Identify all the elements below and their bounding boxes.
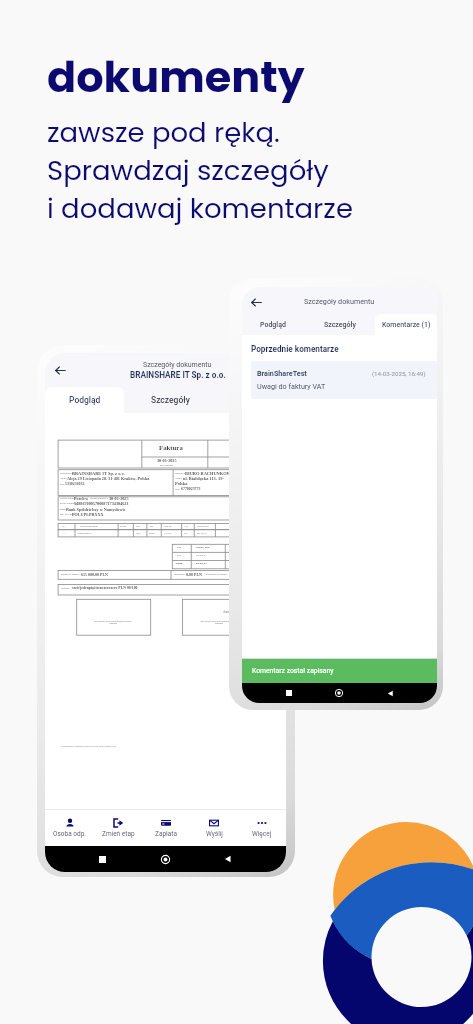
staticText: Razem do zapłaty:: [61, 573, 80, 576]
staticText: VAT: [184, 525, 188, 527]
staticText: Uwagi do faktury VAT: [257, 382, 326, 390]
staticText: Pozostało do zapłaty:: [206, 573, 228, 576]
button[interactable]: Osoba odp.: [45, 810, 94, 846]
staticText: Sposób zapłaty:: [60, 497, 77, 500]
button[interactable]: Back: [250, 296, 262, 308]
staticText: Bank:: [60, 508, 67, 511]
staticText: Faktura: [159, 444, 183, 452]
staticText: Szczegóły dokumentu: [143, 361, 212, 369]
staticText: BRAINSHARE IT Sp. z o.o.: [130, 370, 226, 380]
staticText: Sprzedawca:: [60, 472, 74, 475]
staticText: Poprzednie komentarze: [251, 344, 339, 354]
staticText: BrainShareTest: [257, 369, 307, 377]
button[interactable]: Wyślij: [190, 810, 238, 846]
staticText: 6770023773: [181, 487, 201, 491]
button[interactable]: Back: [224, 855, 232, 863]
staticText: Cena jdn.: [164, 525, 173, 527]
staticText: 5330231032: [65, 482, 85, 486]
staticText: 23%: [177, 554, 182, 557]
button[interactable]: Home: [161, 855, 170, 864]
staticText: Podgląd: [260, 321, 286, 329]
button[interactable]: Zapłata: [142, 810, 190, 846]
staticText: Komentarze (1): [382, 321, 431, 329]
staticText: Wartość netto: [197, 525, 209, 527]
staticText: POLUPLPRXXX: [72, 512, 104, 517]
staticText: 30-01-2025: [157, 458, 177, 463]
staticText: 500 000,00: [196, 554, 207, 557]
staticText: Aleja 29 Listopada 20, 31-401 Kraków, Po…: [67, 476, 150, 481]
staticText: 54886700057000871734304623: [74, 501, 129, 506]
staticText: dokumenty: [47, 47, 305, 107]
staticText: Konto bankowe:: [60, 502, 78, 505]
staticText: 100,0: [136, 532, 141, 534]
staticText: Nabywca:: [175, 472, 186, 475]
button[interactable]: Podgląd: [45, 387, 124, 413]
staticText: 23%: [184, 532, 188, 534]
staticText: Kom: [242, 395, 260, 405]
staticText: Termin płatności:: [90, 497, 109, 500]
staticText: 0,00 PLN: [186, 572, 202, 576]
staticText: Wyślij: [206, 830, 223, 838]
staticText: i dodawaj komentarze: [47, 189, 353, 227]
staticText: Wartość netto: [196, 546, 210, 549]
staticText: Szczegóły dokumentu: [304, 297, 375, 305]
staticText: 30-01-2025: [109, 496, 129, 501]
staticText: Adres:: [175, 477, 182, 480]
staticText: 500 000,00: [197, 532, 207, 534]
staticText: ul. Białołęcka 113, 19-: [183, 476, 224, 481]
staticText: 1 500,00: [164, 532, 172, 534]
staticText: NIP:: [60, 483, 65, 486]
staticText: Lp.: [62, 525, 65, 527]
staticText: Zapłacono:: [174, 573, 186, 576]
staticText: Wydrukowano z programu SaldeoSMART.pl fi…: [61, 745, 116, 747]
staticText: VAT: [177, 546, 182, 549]
staticText: sześćjedenpięćtsenczerozero PLN 00/100: [72, 586, 138, 590]
staticText: BRAINSHARE IT Sp. z o.o.: [72, 471, 125, 476]
staticText: 1: [65, 532, 67, 534]
button[interactable]: Home: [335, 689, 343, 697]
staticText: Anna Nowa: [223, 610, 240, 614]
staticText: Razem: [176, 562, 183, 565]
staticText: Przelew: [74, 496, 89, 501]
staticText: imię, nazwisko i podpis osoby uprawnione…: [184, 620, 254, 624]
staticText: Komentarz został zapisany: [252, 667, 334, 675]
staticText: usługa: [149, 532, 155, 534]
button[interactable]: BrainShareTest: [251, 361, 437, 399]
button[interactable]: Back: [54, 364, 67, 377]
staticText: Nazwa towaru/usługi: [80, 525, 98, 527]
staticText: NIP:: [175, 488, 180, 491]
staticText: Bank Spółdzielczy w Namysłowie: [66, 507, 126, 512]
staticText: Podgląd: [69, 395, 101, 405]
button[interactable]: Szczegóły: [304, 314, 375, 335]
staticText: data wystawienia: [160, 464, 174, 466]
staticText: Sprawdzaj szczegóły: [47, 151, 329, 189]
staticText: Jdn.: [150, 525, 154, 527]
staticText: Adres:: [60, 477, 67, 480]
staticText: Polska: [175, 481, 188, 486]
button[interactable]: Więcej: [238, 810, 286, 846]
staticText: PKWiU: [120, 525, 127, 527]
button[interactable]: Kom: [216, 387, 286, 413]
staticText: 500 000,00: [196, 562, 207, 565]
staticText: Szczegóły: [151, 395, 190, 405]
staticText: 615 000,00 PLN: [81, 572, 108, 576]
button[interactable]: Back: [387, 690, 394, 697]
staticText: imię, nazwisko i podpis osoby uprawnione…: [78, 620, 148, 624]
staticText: Ilość: [136, 525, 141, 527]
staticText: Szczegóły: [324, 321, 356, 329]
staticText: Więcej: [252, 830, 272, 838]
staticText: Słownie:: [61, 587, 70, 590]
staticText: (14-03-2025, 16:49): [372, 370, 426, 377]
staticText: Osoba odp.: [53, 830, 87, 838]
button[interactable]: Komentarze (1): [375, 314, 437, 335]
button[interactable]: Podgląd: [242, 314, 304, 335]
button[interactable]: Zmień etap: [94, 810, 142, 846]
button[interactable]: Szczegóły: [124, 387, 216, 413]
staticText: Zmień etap: [102, 830, 135, 838]
staticText: Zapłata: [155, 830, 178, 838]
staticText: BIURO RACHUNKOWE: [185, 471, 234, 476]
